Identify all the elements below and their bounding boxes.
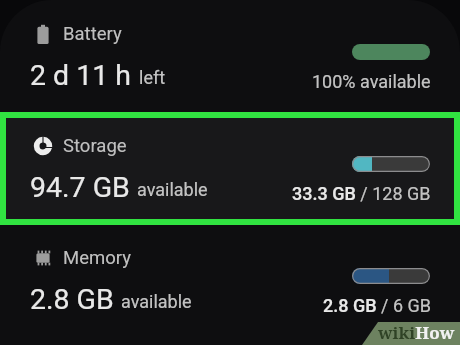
staticText: Storage — [63, 135, 127, 157]
staticText: 2 d 11 h — [30, 59, 132, 92]
staticText: 33.3 GB / 128 GB — [292, 183, 431, 204]
staticText: 2.8 GB — [30, 283, 114, 316]
staticText: 100% available — [312, 71, 431, 92]
button[interactable]: Memory — [0, 224, 460, 345]
staticText: available — [137, 179, 208, 200]
staticText: left — [139, 67, 166, 88]
staticText: Memory — [63, 247, 131, 269]
staticText: Battery — [63, 23, 122, 45]
staticText: wikiHow — [378, 321, 455, 344]
staticText: available — [121, 291, 192, 312]
button[interactable]: Battery — [0, 0, 460, 112]
button[interactable]: Storage — [0, 112, 460, 224]
staticText: 2.8 GB / 6 GB — [323, 295, 431, 316]
staticText: 94.7 GB — [30, 171, 130, 204]
